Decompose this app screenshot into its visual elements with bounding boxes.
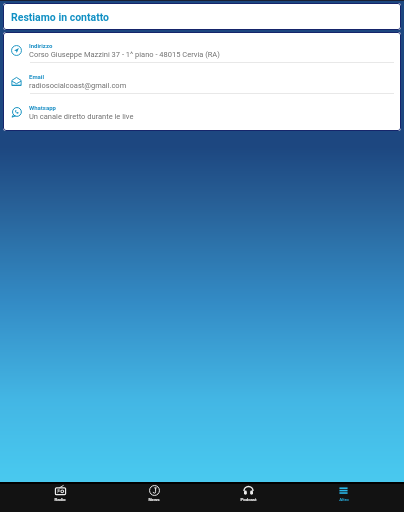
- button[interactable]: Altro: [296, 484, 391, 512]
- staticText: Podcast: [240, 497, 257, 502]
- other: News: [149, 485, 160, 496]
- staticText: Altro: [339, 497, 349, 502]
- button[interactable]: Indirizzo: [3, 32, 401, 62]
- other: Radio: [55, 485, 66, 496]
- button[interactable]: Email: [3, 63, 401, 93]
- other: Podcast: [243, 485, 254, 496]
- other: Altro: [338, 485, 349, 496]
- staticText: Radio: [54, 497, 66, 502]
- button[interactable]: Radio: [13, 484, 107, 512]
- staticText: Un canale diretto durante le live: [29, 112, 134, 121]
- staticText: Email: [29, 73, 44, 80]
- staticText: News: [148, 497, 160, 502]
- button[interactable]: News: [107, 484, 201, 512]
- staticText: Restiamo in contatto: [11, 11, 110, 23]
- staticText: radiosocialcoast@gmail.com: [29, 81, 127, 90]
- button[interactable]: Podcast: [201, 484, 296, 512]
- staticText: Whatsapp: [29, 104, 56, 111]
- button[interactable]: Whatsapp: [3, 94, 401, 124]
- button[interactable]: Restiamo in contatto: [3, 3, 401, 30]
- staticText: Indirizzo: [29, 42, 53, 49]
- staticText: Corso Giuseppe Mazzini 37 - 1^ piano - 4…: [29, 50, 220, 59]
